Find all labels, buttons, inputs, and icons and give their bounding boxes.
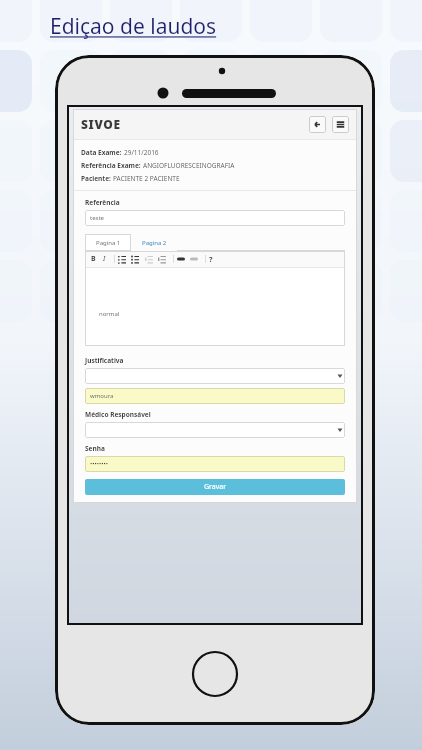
staticText: Ediçao de laudos bbox=[50, 12, 217, 41]
staticText: •••••••• bbox=[90, 460, 109, 468]
button[interactable]: wmoura bbox=[85, 388, 345, 404]
button[interactable] bbox=[85, 422, 345, 438]
staticText: wmoura bbox=[90, 392, 114, 400]
staticText: Justificativa bbox=[85, 356, 124, 365]
staticText: normal bbox=[99, 310, 120, 318]
staticText: Pagina 1 bbox=[96, 239, 121, 247]
button[interactable]: Menu bbox=[332, 116, 349, 133]
staticText: ? bbox=[209, 254, 213, 264]
staticText: teste bbox=[90, 214, 104, 222]
staticText: Senha bbox=[85, 444, 105, 453]
button[interactable]: Pagina 1 bbox=[85, 234, 131, 251]
staticText: B bbox=[91, 254, 96, 264]
staticText: Gravar bbox=[204, 482, 227, 492]
button[interactable]: Back bbox=[309, 116, 326, 133]
staticText: I bbox=[103, 254, 106, 264]
staticText: SIVOE bbox=[81, 116, 121, 132]
staticText: Paciente: bbox=[81, 174, 113, 183]
button[interactable]: Gravar bbox=[85, 479, 345, 495]
staticText: Data Exame: bbox=[81, 148, 124, 157]
staticText: 29/11/2016 bbox=[124, 148, 159, 157]
button[interactable]: Pagina 2 bbox=[131, 234, 177, 251]
staticText: PACIENTE 2 PACIENTE bbox=[113, 174, 180, 183]
staticText: ANGIOFLUORESCEINOGRAFIA bbox=[143, 161, 235, 170]
staticText: Médico Responsável bbox=[85, 410, 151, 419]
button[interactable]: •••••••• bbox=[85, 456, 345, 472]
staticText: Referência Exame: bbox=[81, 161, 143, 170]
staticText: Pagina 2 bbox=[142, 239, 167, 247]
button[interactable] bbox=[85, 368, 345, 384]
button[interactable]: teste bbox=[85, 210, 345, 226]
staticText: Referência bbox=[85, 198, 120, 207]
